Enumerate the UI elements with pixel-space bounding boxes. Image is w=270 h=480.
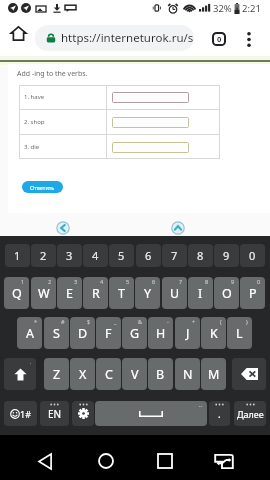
staticText: L bbox=[236, 325, 243, 342]
staticText: X bbox=[79, 366, 87, 383]
button[interactable]: 9 bbox=[214, 244, 239, 267]
staticText: O bbox=[222, 285, 232, 302]
staticText: . bbox=[218, 407, 221, 421]
button[interactable]: 0 bbox=[240, 244, 265, 267]
button[interactable]: More options bbox=[236, 26, 262, 52]
button[interactable]: Screenshot bbox=[206, 443, 242, 479]
staticText: 2 bbox=[40, 248, 47, 263]
staticText: · bbox=[30, 359, 32, 366]
button[interactable]: N bbox=[175, 358, 200, 390]
staticText: E bbox=[66, 285, 73, 302]
staticText: Далее bbox=[237, 408, 264, 420]
button[interactable]: Scroll to top bbox=[171, 221, 185, 235]
staticText: $ bbox=[87, 318, 91, 325]
button[interactable]: . bbox=[209, 401, 230, 426]
button[interactable]: Back bbox=[27, 443, 63, 479]
staticText: 1 bbox=[14, 248, 21, 263]
staticText: 2 bbox=[48, 278, 52, 285]
button[interactable]: T bbox=[109, 277, 134, 309]
staticText: B bbox=[156, 366, 165, 383]
button[interactable]: Home bbox=[5, 20, 31, 46]
button[interactable]: Q bbox=[4, 277, 29, 309]
staticText: 6 bbox=[145, 248, 152, 263]
button[interactable]: Ответить bbox=[22, 181, 63, 193]
staticText: Y bbox=[144, 285, 152, 302]
button[interactable]: W bbox=[31, 277, 56, 309]
button[interactable]: R bbox=[83, 277, 108, 309]
button[interactable] bbox=[112, 117, 189, 128]
staticText: 3 bbox=[66, 248, 73, 263]
button[interactable]: F bbox=[96, 317, 121, 349]
button[interactable]: Backspace bbox=[232, 358, 266, 390]
staticText: 5 bbox=[118, 248, 125, 263]
staticText: + bbox=[192, 318, 196, 325]
button[interactable]: O bbox=[214, 277, 239, 309]
staticText: P bbox=[249, 285, 257, 302]
staticText: 6 bbox=[152, 278, 156, 285]
button[interactable]: H bbox=[148, 317, 173, 349]
button[interactable]: Home bbox=[88, 443, 124, 479]
staticText: Ответить bbox=[30, 184, 55, 191]
staticText: 3. die bbox=[24, 143, 40, 151]
staticText: 1. have bbox=[24, 93, 45, 101]
staticText: Add -ing to the verbs. bbox=[17, 69, 88, 79]
button[interactable]: Keyboard settings bbox=[72, 401, 94, 426]
button[interactable]: I bbox=[188, 277, 213, 309]
staticText: 5 bbox=[126, 278, 130, 285]
button[interactable]: 8 bbox=[188, 244, 213, 267]
button[interactable]: EN bbox=[40, 401, 69, 426]
staticText: H bbox=[156, 325, 166, 342]
button[interactable]: B bbox=[148, 358, 173, 390]
staticText: ( bbox=[220, 318, 222, 325]
button[interactable]: Shift bbox=[4, 358, 36, 390]
button[interactable]: Previous page bbox=[56, 221, 70, 235]
button[interactable] bbox=[112, 92, 189, 103]
staticText: # bbox=[61, 318, 65, 325]
button[interactable]: M bbox=[201, 358, 226, 390]
button[interactable] bbox=[112, 142, 189, 153]
staticText: S bbox=[53, 325, 60, 342]
button[interactable]: Z bbox=[44, 358, 69, 390]
button[interactable]: 6 bbox=[136, 244, 161, 267]
staticText: A bbox=[26, 325, 34, 342]
button[interactable]: K bbox=[201, 317, 226, 349]
button[interactable]: Y bbox=[135, 277, 160, 309]
button[interactable]: D bbox=[70, 317, 95, 349]
button[interactable]: 4 bbox=[83, 244, 108, 267]
staticText: https://interneturok.ru/s bbox=[61, 30, 194, 46]
button[interactable]: Symbols bbox=[4, 401, 37, 426]
button[interactable]: 3 bbox=[57, 244, 82, 267]
staticText: 8 bbox=[197, 248, 204, 263]
button[interactable]: Tabs bbox=[206, 26, 232, 52]
staticText: 1# bbox=[20, 408, 31, 420]
button[interactable]: Space bbox=[95, 401, 207, 426]
staticText: * bbox=[34, 318, 38, 325]
staticText: ·· bbox=[199, 402, 202, 409]
button[interactable]: X bbox=[70, 358, 95, 390]
staticText: 7 bbox=[171, 248, 178, 263]
button[interactable]: V bbox=[122, 358, 147, 390]
button[interactable]: G bbox=[122, 317, 147, 349]
button[interactable]: P bbox=[240, 277, 265, 309]
staticText: 0 bbox=[249, 248, 256, 263]
button[interactable]: L bbox=[227, 317, 252, 349]
button[interactable]: Далее bbox=[234, 401, 266, 426]
button[interactable]: A bbox=[17, 317, 42, 349]
button[interactable]: 7 bbox=[162, 244, 187, 267]
button[interactable]: S bbox=[44, 317, 69, 349]
staticText: Q bbox=[12, 285, 22, 302]
button[interactable]: 1 bbox=[5, 244, 30, 267]
button[interactable]: U bbox=[162, 277, 187, 309]
staticText: J bbox=[186, 325, 190, 342]
button[interactable]: 2 bbox=[31, 244, 56, 267]
staticText: 4 bbox=[92, 248, 99, 263]
staticText: C bbox=[105, 366, 113, 383]
button[interactable]: J bbox=[175, 317, 200, 349]
button[interactable]: https://interneturok.ru/s bbox=[35, 25, 194, 51]
button[interactable]: C bbox=[96, 358, 121, 390]
button[interactable]: E bbox=[57, 277, 82, 309]
staticText: M bbox=[208, 366, 220, 383]
button[interactable]: Recent apps bbox=[147, 443, 183, 479]
staticText: N bbox=[183, 366, 193, 383]
button[interactable]: 5 bbox=[109, 244, 134, 267]
